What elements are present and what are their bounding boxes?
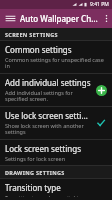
staticText: 9:41 PM — [90, 1, 109, 8]
staticText: Transition type when switching screen — [5, 194, 104, 197]
button[interactable]: Add individual settings — [94, 83, 108, 97]
staticText: Transition type — [5, 182, 61, 193]
button[interactable]: Use lock screen settings — [0, 107, 112, 139]
button[interactable]: Common settings — [0, 41, 112, 73]
button[interactable]: Lock screen settings — [0, 140, 112, 165]
staticText: SCREEN SETTINGS — [5, 31, 58, 38]
staticText: Common settings — [5, 44, 72, 55]
staticText: Show lock screen with another settings — [5, 122, 84, 136]
button[interactable]: Add individual settings — [0, 74, 112, 106]
button[interactable]: Open navigation menu — [0, 9, 20, 28]
button[interactable]: Enabled checkbox — [94, 116, 108, 130]
staticText: DRAWING SETTINGS — [5, 169, 65, 176]
staticText: Add individual settings for specified sc… — [5, 89, 73, 103]
staticText: Use lock screen settings — [5, 110, 91, 121]
button[interactable]: Transition type — [0, 179, 112, 200]
staticText: Lock screen settings — [5, 143, 81, 154]
staticText: Add individual settings — [5, 77, 91, 88]
staticText: Common settings for unspecified case in … — [5, 56, 108, 70]
staticText: Settings for lock screen — [5, 155, 66, 162]
button[interactable]: More options — [100, 9, 112, 28]
staticText: Auto Wallpaper Changer — [20, 13, 100, 24]
